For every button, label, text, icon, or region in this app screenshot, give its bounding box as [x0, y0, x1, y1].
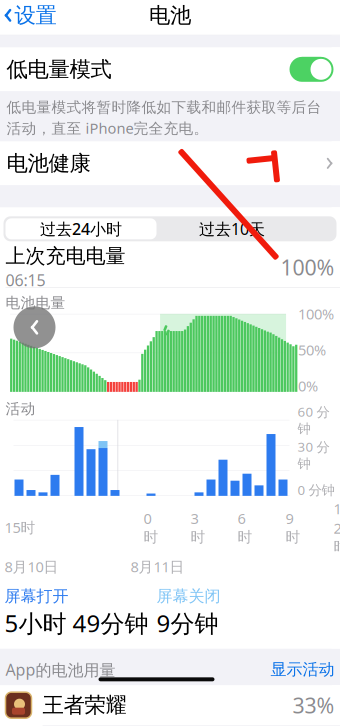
button[interactable]: 王者荣耀 — [0, 685, 340, 725]
button[interactable]: 过去24小时 — [5, 218, 156, 239]
button[interactable]: 过去10天 — [156, 218, 307, 239]
button[interactable]: 电池健康 — [0, 141, 340, 185]
staticText: 显示活动 — [270, 660, 334, 679]
button[interactable]: 返回 — [13, 306, 55, 348]
staticText: 6时 — [237, 509, 252, 546]
staticText: 过去10天 — [199, 218, 265, 239]
staticText: App的电池用量 — [5, 659, 115, 680]
staticText: 电池电量 — [5, 294, 65, 312]
staticText: 电池健康 — [6, 150, 90, 176]
staticText: 低电量模式将暂时降低如下载和邮件获取等后台活动，直至 iPhone完全充电。 — [6, 98, 321, 138]
staticText: 活动 — [5, 400, 35, 418]
staticText: 0时 — [143, 509, 158, 546]
staticText: 9时 — [285, 509, 300, 546]
staticText: 60 分钟 — [297, 403, 329, 437]
staticText: 0% — [298, 376, 318, 396]
staticText: 33% — [292, 691, 334, 719]
staticText: 王者荣耀 — [42, 692, 126, 718]
staticText: 8月10日 — [4, 557, 58, 576]
staticText: 30 分钟 — [297, 438, 329, 472]
button[interactable]: 低电量模式 — [0, 47, 340, 91]
button[interactable]: 显示活动 — [270, 660, 334, 679]
staticText: 屏幕打开 — [4, 586, 68, 606]
staticText: 12时 — [333, 499, 340, 556]
staticText: 5小时 49分钟 — [4, 607, 148, 639]
staticText: 上次充电电量 — [5, 244, 125, 268]
staticText: 100% — [280, 253, 334, 281]
staticText: 3时 — [190, 509, 205, 546]
staticText: 设置 — [14, 2, 56, 28]
staticText: 8月11日 — [130, 557, 184, 576]
staticText: 电池 — [149, 2, 191, 28]
staticText: 低电量模式 — [6, 56, 111, 82]
staticText: 0 分钟 — [297, 481, 334, 499]
button[interactable]: 设置 — [0, 0, 68, 35]
staticText: 50% — [298, 340, 326, 360]
staticText: 15时 — [4, 518, 35, 537]
staticText: 屏幕关闭 — [156, 586, 220, 606]
staticText: 过去24小时 — [40, 218, 122, 239]
staticText: 100% — [298, 304, 334, 324]
staticText: 06:15 — [5, 269, 45, 291]
staticText: 9分钟 — [156, 607, 218, 639]
